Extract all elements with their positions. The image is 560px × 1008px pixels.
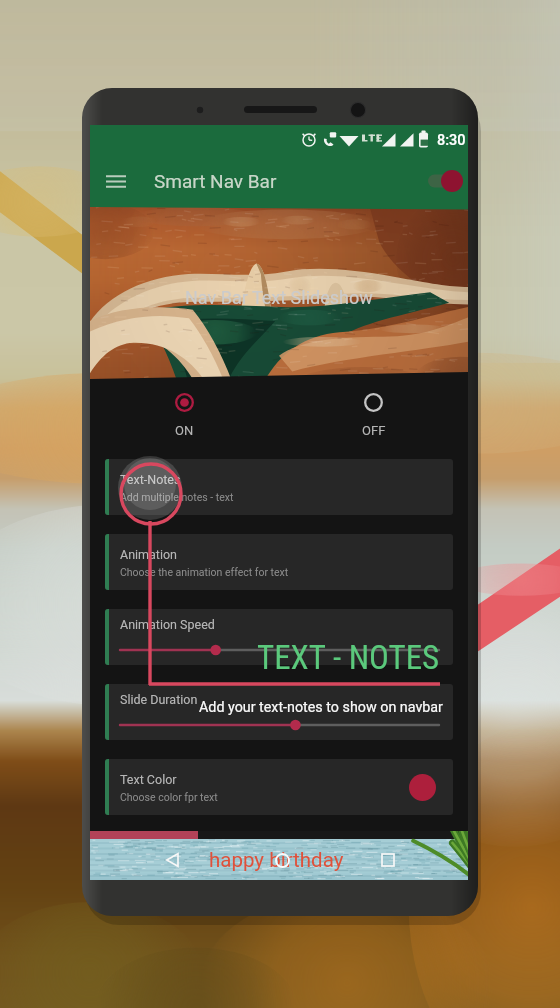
- button[interactable]: Back: [158, 846, 186, 874]
- staticText: Slide Duration: [120, 692, 198, 707]
- staticText: Add your text-notes to show on navbar: [199, 699, 443, 716]
- button[interactable]: Toggle nav bar service: [422, 164, 466, 198]
- staticText: Choose the animation effect for text: [120, 566, 289, 578]
- staticText: Choose color fpr text: [120, 791, 218, 803]
- staticText: Smart Nav Bar: [154, 170, 277, 192]
- button[interactable]: Recent apps: [374, 846, 402, 874]
- button[interactable]: Text Color: [105, 759, 453, 815]
- button[interactable]: OFF: [279, 385, 468, 446]
- staticText: Animation Speed: [120, 617, 215, 632]
- button[interactable]: ON: [90, 385, 279, 446]
- button[interactable]: Text-Notes: [105, 459, 453, 515]
- button[interactable]: Open navigation drawer: [99, 164, 133, 198]
- staticText: Text Color: [120, 772, 177, 787]
- staticText: TEXT - NOTES: [257, 638, 440, 677]
- staticText: OFF: [362, 423, 386, 438]
- staticText: happy birthday: [209, 848, 344, 872]
- staticText: Animation: [120, 547, 178, 562]
- staticText: ON: [175, 423, 194, 438]
- button[interactable]: Animation Speed: [105, 609, 453, 665]
- staticText: Text-Notes: [120, 472, 181, 487]
- staticText: 8:30: [437, 132, 466, 149]
- staticText: Add multiple notes - text: [120, 491, 234, 503]
- button[interactable]: Slide Duration: [105, 684, 453, 740]
- button[interactable]: Animation: [105, 534, 453, 590]
- staticText: Nav Bar Text Slideshow: [185, 287, 373, 308]
- button[interactable]: Home: [267, 845, 297, 875]
